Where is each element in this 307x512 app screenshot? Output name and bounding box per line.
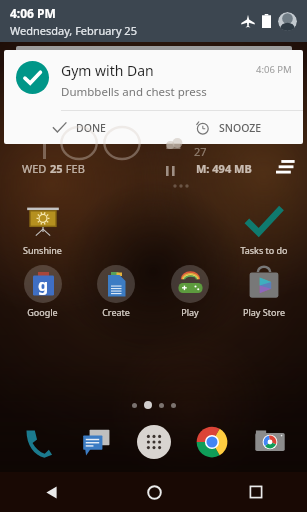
button[interactable]: Recents: [205, 472, 307, 512]
staticText: g: [38, 274, 49, 296]
button[interactable]: Messages: [67, 416, 125, 468]
staticText: Wednesday, February 25: [10, 23, 137, 38]
staticText: 27: [194, 144, 207, 159]
staticText: 4:06 PM: [10, 5, 56, 21]
other: Account: [278, 12, 297, 31]
staticText: FEB: [63, 161, 85, 176]
staticText: DONE: [76, 121, 106, 135]
button[interactable]: Camera: [241, 416, 299, 468]
button[interactable]: Widget stack: [276, 157, 295, 176]
other: Airplane mode: [241, 14, 255, 28]
button[interactable]: Play: [153, 264, 227, 318]
button[interactable]: SNOOZE: [153, 111, 303, 144]
button[interactable]: Phone: [8, 416, 67, 468]
button[interactable]: Play Store: [227, 264, 301, 318]
staticText: Play Store: [243, 306, 285, 318]
staticText: M: 494 MB: [196, 161, 252, 176]
staticText: Play: [181, 306, 199, 318]
staticText: Dumbbells and chest press: [61, 84, 207, 100]
button[interactable]: DONE: [4, 111, 153, 144]
staticText: 25: [50, 161, 63, 176]
button[interactable]: Home: [103, 472, 205, 512]
button[interactable]: Tasks to do: [227, 202, 301, 256]
staticText: Gym with Dan: [61, 61, 154, 80]
button[interactable]: Gym with Dan: [4, 50, 303, 144]
button[interactable]: All apps: [125, 416, 183, 468]
button[interactable]: Create: [79, 264, 153, 318]
staticText: Google: [27, 306, 58, 318]
button[interactable]: Back: [0, 472, 103, 512]
button[interactable]: Chrome: [183, 416, 241, 468]
staticText: WED: [22, 161, 50, 176]
button[interactable]: g: [6, 264, 79, 318]
staticText: Create: [102, 306, 130, 318]
other: Battery: [262, 14, 271, 28]
button[interactable]: Sunshine: [6, 202, 79, 256]
staticText: Tasks to do: [240, 244, 288, 256]
staticText: Sunshine: [23, 244, 62, 256]
staticText: 4:06 PM: [256, 63, 292, 76]
staticText: SNOOZE: [219, 121, 262, 135]
